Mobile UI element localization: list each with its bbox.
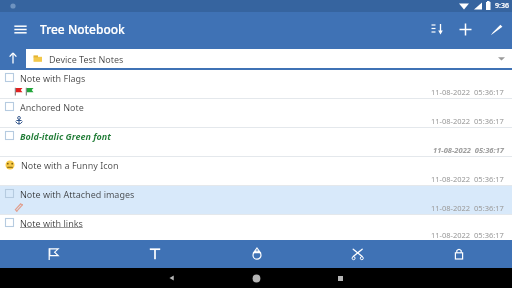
button[interactable]: Text style — [107, 240, 202, 268]
button[interactable]: Open navigation drawer — [0, 12, 40, 46]
staticText: 11-08-2022 05:36:17 — [433, 145, 504, 155]
button[interactable]: Note with links — [0, 215, 512, 240]
staticText: Note with Attached images — [20, 188, 135, 200]
button[interactable]: Anchored Note — [0, 99, 512, 128]
button[interactable]: Favorite — [209, 240, 304, 268]
staticText: Note with Flags — [20, 72, 86, 84]
staticText: 11-08-2022 05:36:17 — [431, 174, 504, 184]
button[interactable]: Note with Flags — [0, 70, 512, 99]
staticText: Tree Notebook — [40, 21, 125, 37]
button[interactable]: Lock — [411, 240, 506, 268]
staticText: 11-08-2022 05:36:17 — [431, 203, 504, 213]
button[interactable]: Edit — [480, 12, 512, 46]
button[interactable]: Add — [451, 12, 480, 46]
button[interactable]: Go up — [0, 46, 26, 70]
staticText: Bold-italic Green font — [20, 130, 111, 142]
button[interactable]: Note with a Funny Icon — [0, 157, 512, 186]
staticText: Device Test Notes — [49, 53, 124, 65]
button[interactable]: Note with Attached images — [0, 186, 512, 215]
button[interactable]: Flag — [6, 240, 101, 268]
staticText: Note with a Funny Icon — [21, 159, 119, 171]
button[interactable]: Device Test Notes — [26, 49, 512, 68]
staticText: 11-08-2022 05:36:17 — [431, 230, 504, 240]
staticText: Note with links — [20, 217, 83, 229]
staticText: Anchored Note — [20, 101, 84, 113]
button[interactable]: Bold-italic Green font — [0, 128, 512, 157]
button[interactable]: Sort — [421, 12, 451, 46]
staticText: 11-08-2022 05:36:17 — [431, 116, 504, 126]
staticText: 11-08-2022 05:36:17 — [431, 87, 504, 97]
staticText: 9:36 — [495, 1, 509, 11]
button[interactable]: Cut — [310, 240, 405, 268]
